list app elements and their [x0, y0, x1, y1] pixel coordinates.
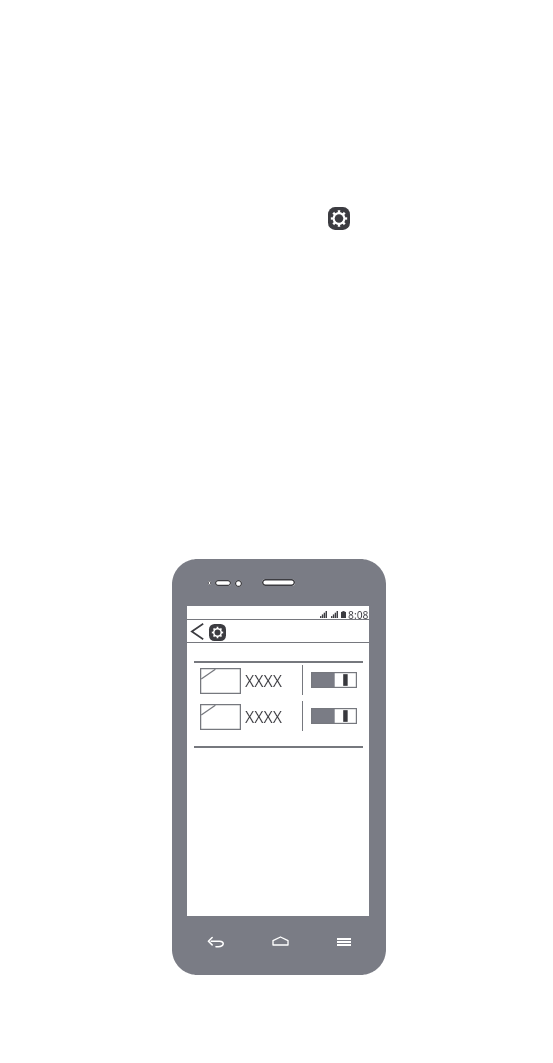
button[interactable]: Settings [328, 207, 350, 230]
staticText: 8:08 [348, 608, 369, 621]
button[interactable]: Settings [209, 624, 226, 641]
button[interactable]: Back [191, 623, 204, 640]
button[interactable] [311, 672, 357, 688]
button[interactable]: Menu [337, 938, 351, 946]
button[interactable] [311, 708, 357, 724]
staticText: XXXX [245, 706, 283, 728]
button[interactable]: XXXX [187, 664, 369, 695]
staticText: XXXX [245, 670, 283, 692]
button[interactable]: Home [273, 937, 288, 945]
button[interactable]: XXXX [187, 700, 369, 731]
button[interactable]: Back [208, 937, 224, 947]
